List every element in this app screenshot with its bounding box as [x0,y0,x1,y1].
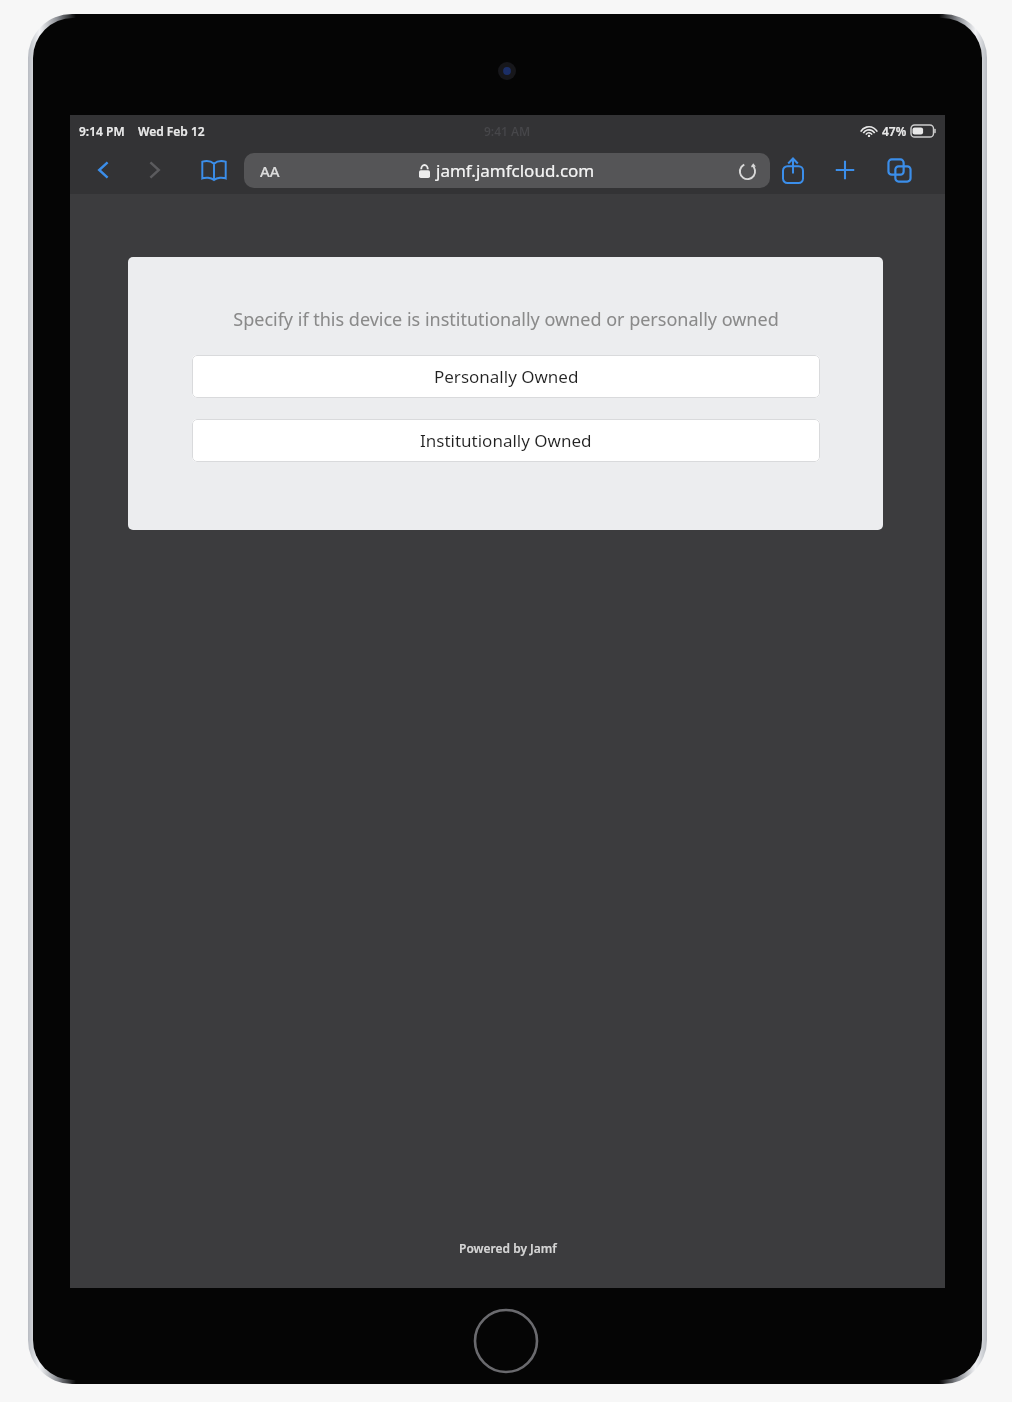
button[interactable]: Bookmarks [192,148,236,192]
staticText: 9:14 PM [79,123,125,139]
button[interactable]: Institutionally Owned [192,419,820,462]
staticText: Powered by Jamf [459,1240,557,1256]
staticText: 9:41 AM [484,123,531,139]
button[interactable]: Reload [734,158,760,184]
staticText: Institutionally Owned [420,429,592,452]
button[interactable]: Back [82,148,126,192]
staticText: 47% [882,123,907,139]
button[interactable]: Forward [132,148,176,192]
staticText: Wed Feb 12 [138,123,205,139]
staticText: Personally Owned [434,365,579,388]
staticText: AA [260,161,280,181]
button[interactable]: Personally Owned [192,355,820,398]
button[interactable]: New Tab [823,148,867,192]
button[interactable]: Share [771,148,815,192]
staticText: Specify if this device is institutionall… [233,307,779,332]
button[interactable]: Show Tabs [877,148,921,192]
button[interactable]: AA [244,153,770,188]
staticText: jamf.jamfcloud.com [436,159,595,182]
